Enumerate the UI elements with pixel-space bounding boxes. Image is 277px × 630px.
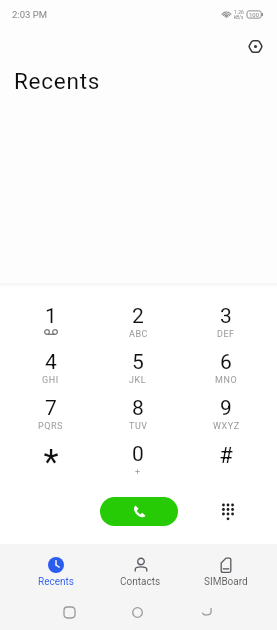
button[interactable]: #: [182, 437, 270, 483]
staticText: 9: [220, 396, 232, 421]
staticText: 5: [132, 350, 144, 375]
staticText: 4: [45, 350, 57, 375]
button[interactable]: 8: [94, 391, 182, 437]
staticText: +: [135, 467, 141, 478]
button[interactable]: Recent apps: [35, 594, 103, 630]
staticText: 1: [45, 304, 57, 329]
button[interactable]: 1: [7, 299, 94, 345]
button[interactable]: 0: [94, 437, 182, 483]
staticText: 6: [220, 350, 232, 375]
button[interactable]: SIMBoard: [183, 544, 268, 594]
staticText: Contacts: [120, 576, 161, 588]
staticText: WXYZ: [213, 421, 240, 432]
staticText: *: [43, 442, 59, 483]
staticText: SIMBoard: [204, 576, 248, 588]
staticText: ABC: [129, 329, 148, 340]
staticText: 0: [132, 442, 144, 467]
staticText: JKL: [129, 375, 147, 386]
button[interactable]: Call: [100, 497, 178, 526]
button[interactable]: Recents: [13, 544, 98, 594]
staticText: DEF: [217, 329, 235, 340]
button[interactable]: 6: [182, 345, 270, 391]
staticText: #: [219, 443, 233, 469]
button[interactable]: 4: [7, 345, 94, 391]
staticText: MNO: [215, 375, 238, 386]
staticText: Recents: [14, 68, 101, 94]
staticText: PQRS: [38, 421, 63, 432]
staticText: 3: [220, 304, 232, 329]
button[interactable]: 3: [182, 299, 270, 345]
staticText: kB/s: [234, 15, 244, 20]
button[interactable]: 9: [182, 391, 270, 437]
button[interactable]: Settings: [242, 33, 268, 59]
button[interactable]: Back: [172, 594, 241, 630]
button[interactable]: 7: [7, 391, 94, 437]
staticText: 2: [132, 304, 144, 329]
button[interactable]: Home: [103, 594, 172, 630]
staticText: 7: [45, 396, 57, 421]
staticText: 8: [132, 396, 144, 421]
staticText: 1.26: [234, 9, 244, 15]
staticText: GHI: [42, 375, 59, 386]
button[interactable]: 5: [94, 345, 182, 391]
staticText: 2:03 PM: [12, 9, 47, 20]
staticText: Recents: [38, 576, 74, 588]
staticText: 100: [249, 11, 260, 18]
button[interactable]: Show keypad: [214, 498, 241, 525]
button[interactable]: Contacts: [98, 544, 183, 594]
button[interactable]: *: [7, 437, 94, 483]
staticText: TUV: [129, 421, 148, 432]
button[interactable]: 2: [94, 299, 182, 345]
